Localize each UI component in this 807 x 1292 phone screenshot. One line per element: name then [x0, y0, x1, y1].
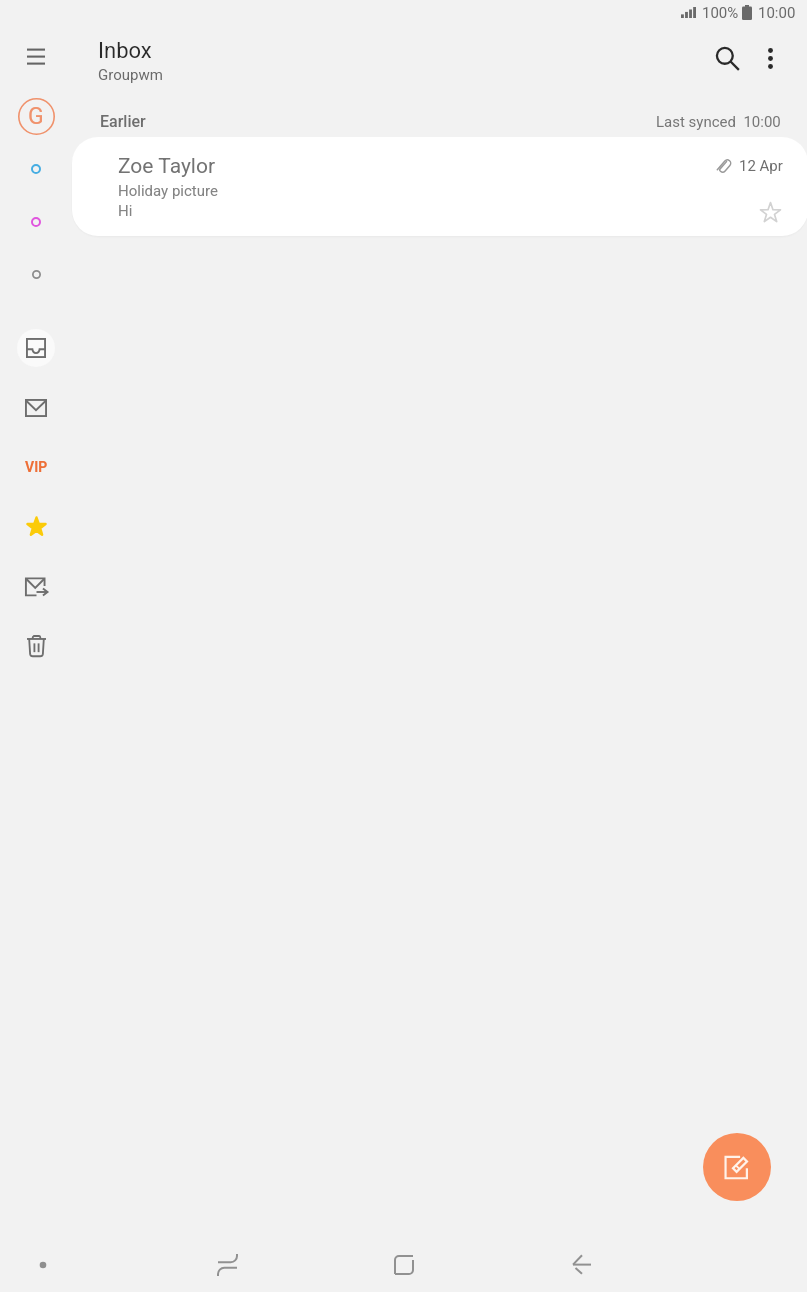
- staticText: Last synced 10:00: [656, 113, 781, 131]
- button[interactable]: Recent apps: [204, 1242, 250, 1288]
- button[interactable]: More options: [746, 34, 794, 82]
- button[interactable]: Folder: [14, 252, 58, 296]
- staticText: 100%: [702, 4, 739, 22]
- button[interactable]: Account: [12, 92, 60, 140]
- staticText: VIP: [25, 459, 48, 475]
- button[interactable]: Zoe Taylor: [72, 137, 807, 236]
- staticText: G: [28, 103, 44, 130]
- button[interactable]: VIP: [12, 443, 60, 491]
- button[interactable]: Star: [744, 186, 796, 236]
- staticText: Holiday picture: [118, 182, 218, 200]
- button[interactable]: Inbox: [17, 329, 55, 367]
- staticText: 10:00: [758, 4, 796, 22]
- button[interactable]: Home: [381, 1242, 427, 1288]
- button[interactable]: Trash: [12, 622, 60, 670]
- staticText: 12 Apr: [739, 157, 783, 175]
- button[interactable]: Starred: [12, 502, 60, 550]
- staticText: Earlier: [100, 112, 146, 131]
- button[interactable]: Search: [703, 34, 751, 82]
- button[interactable]: Priority folder: [14, 147, 58, 191]
- button[interactable]: Back: [559, 1242, 605, 1288]
- button[interactable]: Sent: [12, 563, 60, 611]
- button[interactable]: Unread: [12, 384, 60, 432]
- button[interactable]: Navigation menu: [12, 33, 60, 81]
- button[interactable]: Assistant: [20, 1242, 66, 1288]
- button[interactable]: Compose: [703, 1133, 771, 1201]
- staticText: Inbox: [98, 38, 152, 64]
- staticText: Groupwm: [98, 66, 163, 84]
- button[interactable]: Folder: [14, 200, 58, 244]
- staticText: Hi: [118, 202, 133, 220]
- staticText: Zoe Taylor: [118, 154, 216, 179]
